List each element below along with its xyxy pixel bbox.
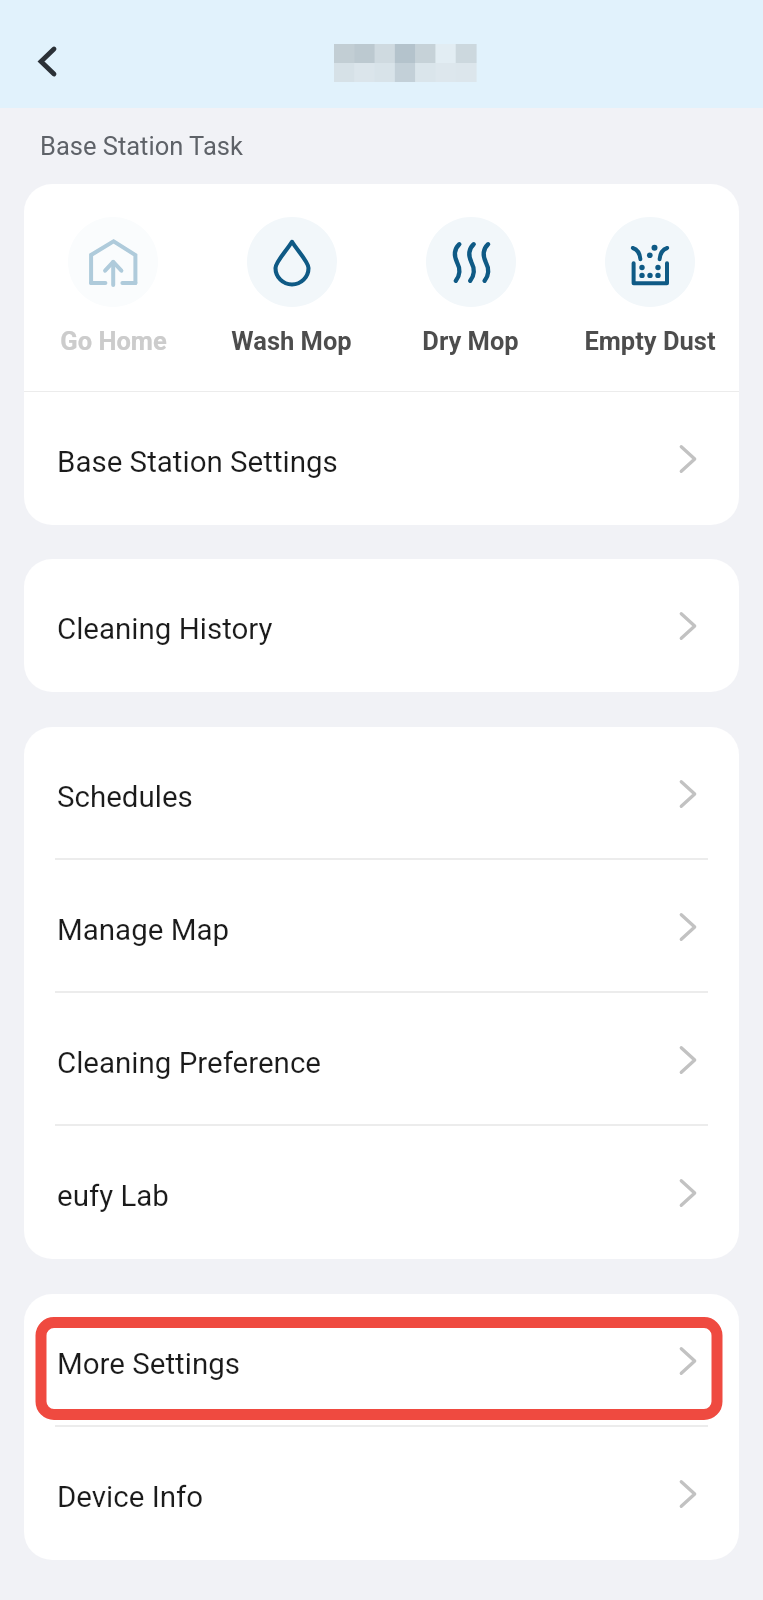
staticText: Cleaning Preference — [57, 1046, 321, 1081]
staticText: Manage Map — [57, 913, 230, 948]
staticText: Base Station Task — [40, 131, 243, 161]
button[interactable]: Schedules — [24, 727, 739, 860]
staticText: Wash Mop — [231, 326, 352, 356]
button[interactable]: Cleaning History — [24, 559, 739, 692]
button[interactable]: Base Station Settings — [24, 392, 739, 525]
staticText: More Settings — [57, 1347, 240, 1382]
button[interactable]: Cleaning Preference — [24, 993, 739, 1126]
button[interactable]: Back — [20, 34, 74, 88]
button[interactable]: Device Info — [24, 1427, 739, 1560]
staticText: Go Home — [60, 326, 167, 356]
button[interactable]: eufy Lab — [24, 1126, 739, 1259]
staticText: Schedules — [57, 780, 193, 815]
button[interactable]: Go Home — [24, 184, 202, 391]
staticText: eufy Lab — [57, 1179, 169, 1214]
staticText: Empty Dust — [584, 326, 716, 356]
staticText: Cleaning History — [57, 612, 273, 647]
button[interactable]: Empty Dust — [560, 184, 739, 391]
button[interactable]: Dry Mop — [381, 184, 560, 391]
button[interactable]: More Settings — [24, 1294, 739, 1427]
staticText: Base Station Settings — [57, 445, 338, 480]
button[interactable]: Manage Map — [24, 860, 739, 993]
button[interactable]: Wash Mop — [202, 184, 381, 391]
staticText: Dry Mop — [422, 326, 519, 356]
staticText: Device Info — [57, 1480, 204, 1515]
